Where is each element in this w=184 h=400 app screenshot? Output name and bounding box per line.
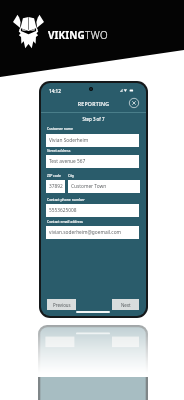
button[interactable]: 5553625008 <box>46 204 139 217</box>
staticText: Previous <box>53 302 71 308</box>
staticText: 37892 <box>49 183 63 190</box>
staticText: Customer Town <box>71 183 107 190</box>
staticText: Street address <box>47 148 71 153</box>
staticText: TWO <box>85 28 109 42</box>
button[interactable]: Next <box>112 299 139 310</box>
staticText: Test avenue 567 <box>49 158 86 165</box>
button[interactable]: Customer Town <box>68 180 140 193</box>
button[interactable]: Vivian Soderheim <box>46 134 139 147</box>
button[interactable]: vivian.soderheim@goemail.com <box>46 226 139 239</box>
staticText: vivian.soderheim@goemail.com <box>49 229 122 236</box>
staticText: Step 3 of 7 <box>41 116 146 122</box>
staticText: Contact email address <box>47 219 83 224</box>
button[interactable]: Test avenue 567 <box>46 155 139 168</box>
staticText: VIKING <box>48 28 85 42</box>
staticText: Vivian Soderheim <box>49 137 89 144</box>
staticText: 5553625008 <box>49 207 77 214</box>
staticText: Contact phone number <box>47 197 85 202</box>
staticText: City <box>68 173 75 178</box>
staticText: REPORTING <box>41 100 146 107</box>
staticText: Customer name <box>47 126 73 131</box>
staticText: ZIP code <box>47 173 61 178</box>
button[interactable]: Previous <box>47 299 76 310</box>
button[interactable]: Close <box>128 97 140 109</box>
button[interactable]: 37892 <box>46 180 65 193</box>
staticText: Next <box>121 302 131 308</box>
staticText: 14:12 <box>49 88 61 94</box>
